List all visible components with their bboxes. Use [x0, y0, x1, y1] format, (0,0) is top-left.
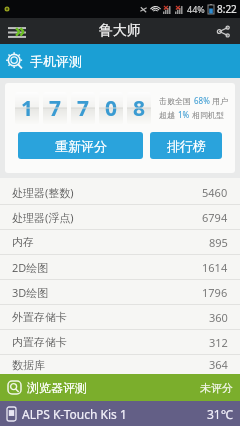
staticText: 1 [21, 94, 34, 123]
staticText: 312 [209, 335, 228, 350]
button[interactable]: 3D绘图 [0, 280, 240, 305]
staticText: 手机评测 [30, 53, 82, 69]
staticText: 44% [187, 3, 205, 15]
button[interactable]: 重新评分 [18, 132, 143, 159]
staticText: 排行榜 [167, 138, 206, 154]
button[interactable]: Share [206, 18, 240, 44]
button[interactable]: 2D绘图 [0, 255, 240, 280]
staticText: 31℃ [207, 406, 233, 422]
staticText: 超越 [159, 109, 178, 120]
button[interactable]: 手机评测 [0, 44, 240, 78]
staticText: 击败全国 [159, 95, 194, 106]
staticText: 相同机型 [190, 109, 225, 120]
staticText: 数据库 [12, 358, 45, 372]
staticText: 360 [209, 310, 228, 325]
staticText: 处理器(浮点) [12, 210, 74, 225]
button[interactable]: 处理器(整数) [0, 180, 240, 205]
staticText: 8:22 [217, 2, 237, 16]
button[interactable]: ALPS K-Touch Kis 1 [0, 401, 240, 426]
staticText: 364 [209, 357, 228, 372]
button[interactable]: 浏览器评测 [0, 374, 240, 401]
staticText: 2D绘图 [12, 260, 49, 275]
staticText: 7 [77, 94, 90, 123]
staticText: 重新评分 [55, 138, 107, 154]
staticText: 68% [194, 95, 210, 106]
staticText: 1796 [202, 285, 228, 300]
staticText: 7 [49, 94, 62, 123]
button[interactable]: 外置存储卡 [0, 305, 240, 330]
staticText: 鲁大师 [99, 22, 141, 40]
staticText: 5460 [202, 185, 228, 200]
staticText: 3D绘图 [12, 285, 49, 300]
staticText: 内存 [12, 235, 34, 249]
staticText: 1614 [202, 260, 228, 275]
button[interactable]: 内置存储卡 [0, 330, 240, 355]
button[interactable]: Menu [0, 18, 34, 44]
button[interactable]: 内存 [0, 230, 240, 255]
staticText: 0 [105, 94, 118, 123]
button[interactable]: 排行榜 [150, 132, 222, 159]
staticText: ALPS K-Touch Kis 1 [22, 406, 127, 422]
staticText: 6794 [202, 210, 228, 225]
staticText: 用户 [210, 95, 229, 106]
button[interactable]: 处理器(浮点) [0, 205, 240, 230]
button[interactable]: 数据库 [0, 355, 240, 374]
staticText: 内置存储卡 [12, 335, 67, 349]
staticText: 895 [209, 235, 228, 250]
staticText: 1% [178, 109, 190, 120]
staticText: 浏览器评测 [27, 380, 87, 395]
staticText: 处理器(整数) [12, 185, 74, 200]
staticText: 未评分 [200, 381, 233, 395]
staticText: 8 [133, 94, 146, 123]
staticText: 外置存储卡 [12, 310, 67, 324]
